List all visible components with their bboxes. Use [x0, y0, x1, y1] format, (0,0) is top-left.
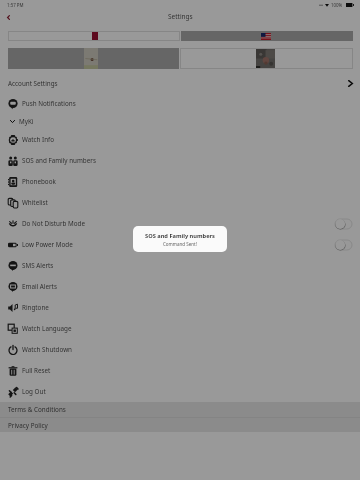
button[interactable]: Email Alerts: [0, 276, 360, 297]
button[interactable]: Watch Shutdown: [0, 339, 360, 360]
staticText: Ringtone: [22, 303, 49, 312]
button[interactable]: Banner 2: [181, 31, 353, 41]
staticText: Full Reset: [22, 366, 51, 375]
button[interactable]: Banner 3: [8, 48, 179, 69]
button[interactable]: Phonebook: [0, 171, 360, 192]
staticText: Watch Shutdown: [22, 345, 72, 354]
button[interactable]: SMS Alerts: [0, 255, 360, 276]
staticText: 1:57 PM: [7, 2, 24, 8]
staticText: Terms & Conditions: [8, 405, 66, 414]
staticText: MyKi: [19, 117, 34, 126]
staticText: Low Power Mode: [22, 240, 73, 249]
button[interactable]: Banner 4: [180, 48, 353, 69]
staticText: SMS Alerts: [22, 261, 54, 270]
staticText: SOS and Family numbers: [22, 156, 96, 165]
staticText: Account Settings: [8, 79, 58, 88]
button[interactable]: Full Reset: [0, 360, 360, 381]
staticText: 100%: [331, 2, 343, 8]
button[interactable]: Whitelist: [0, 192, 360, 213]
button[interactable]: Low Power Mode: [0, 234, 360, 255]
button[interactable]: Do Not Disturb Mode: [335, 219, 352, 229]
staticText: Privacy Policy: [8, 421, 48, 430]
staticText: Email Alerts: [22, 282, 57, 291]
staticText: Log Out: [22, 387, 46, 396]
button[interactable]: Log Out: [0, 381, 360, 402]
staticText: Phonebook: [22, 177, 56, 186]
staticText: Watch Language: [22, 324, 72, 333]
button[interactable]: Do Not Disturb Mode: [0, 213, 360, 234]
button[interactable]: Account Settings: [0, 74, 360, 92]
button[interactable]: Low Power Mode: [335, 240, 352, 250]
button[interactable]: Watch Language: [0, 318, 360, 339]
button[interactable]: Push Notifications: [0, 93, 360, 114]
button[interactable]: Watch Info: [0, 129, 360, 150]
button[interactable]: Privacy Policy: [0, 418, 360, 432]
button[interactable]: Banner 1: [8, 31, 180, 41]
button[interactable]: Back: [0, 8, 17, 26]
button[interactable]: Ringtone: [0, 297, 360, 318]
button[interactable]: SOS and Family numbers: [0, 150, 360, 171]
staticText: Settings: [168, 12, 193, 21]
staticText: Whitelist: [22, 198, 48, 207]
staticText: Push Notifications: [22, 99, 76, 108]
staticText: SOS and Family numbers: [145, 232, 215, 240]
staticText: Command Sent!: [163, 241, 197, 247]
button[interactable]: Terms & Conditions: [0, 402, 360, 417]
button[interactable]: MyKi: [0, 113, 360, 130]
staticText: Watch Info: [22, 135, 55, 144]
staticText: Do Not Disturb Mode: [22, 219, 86, 228]
